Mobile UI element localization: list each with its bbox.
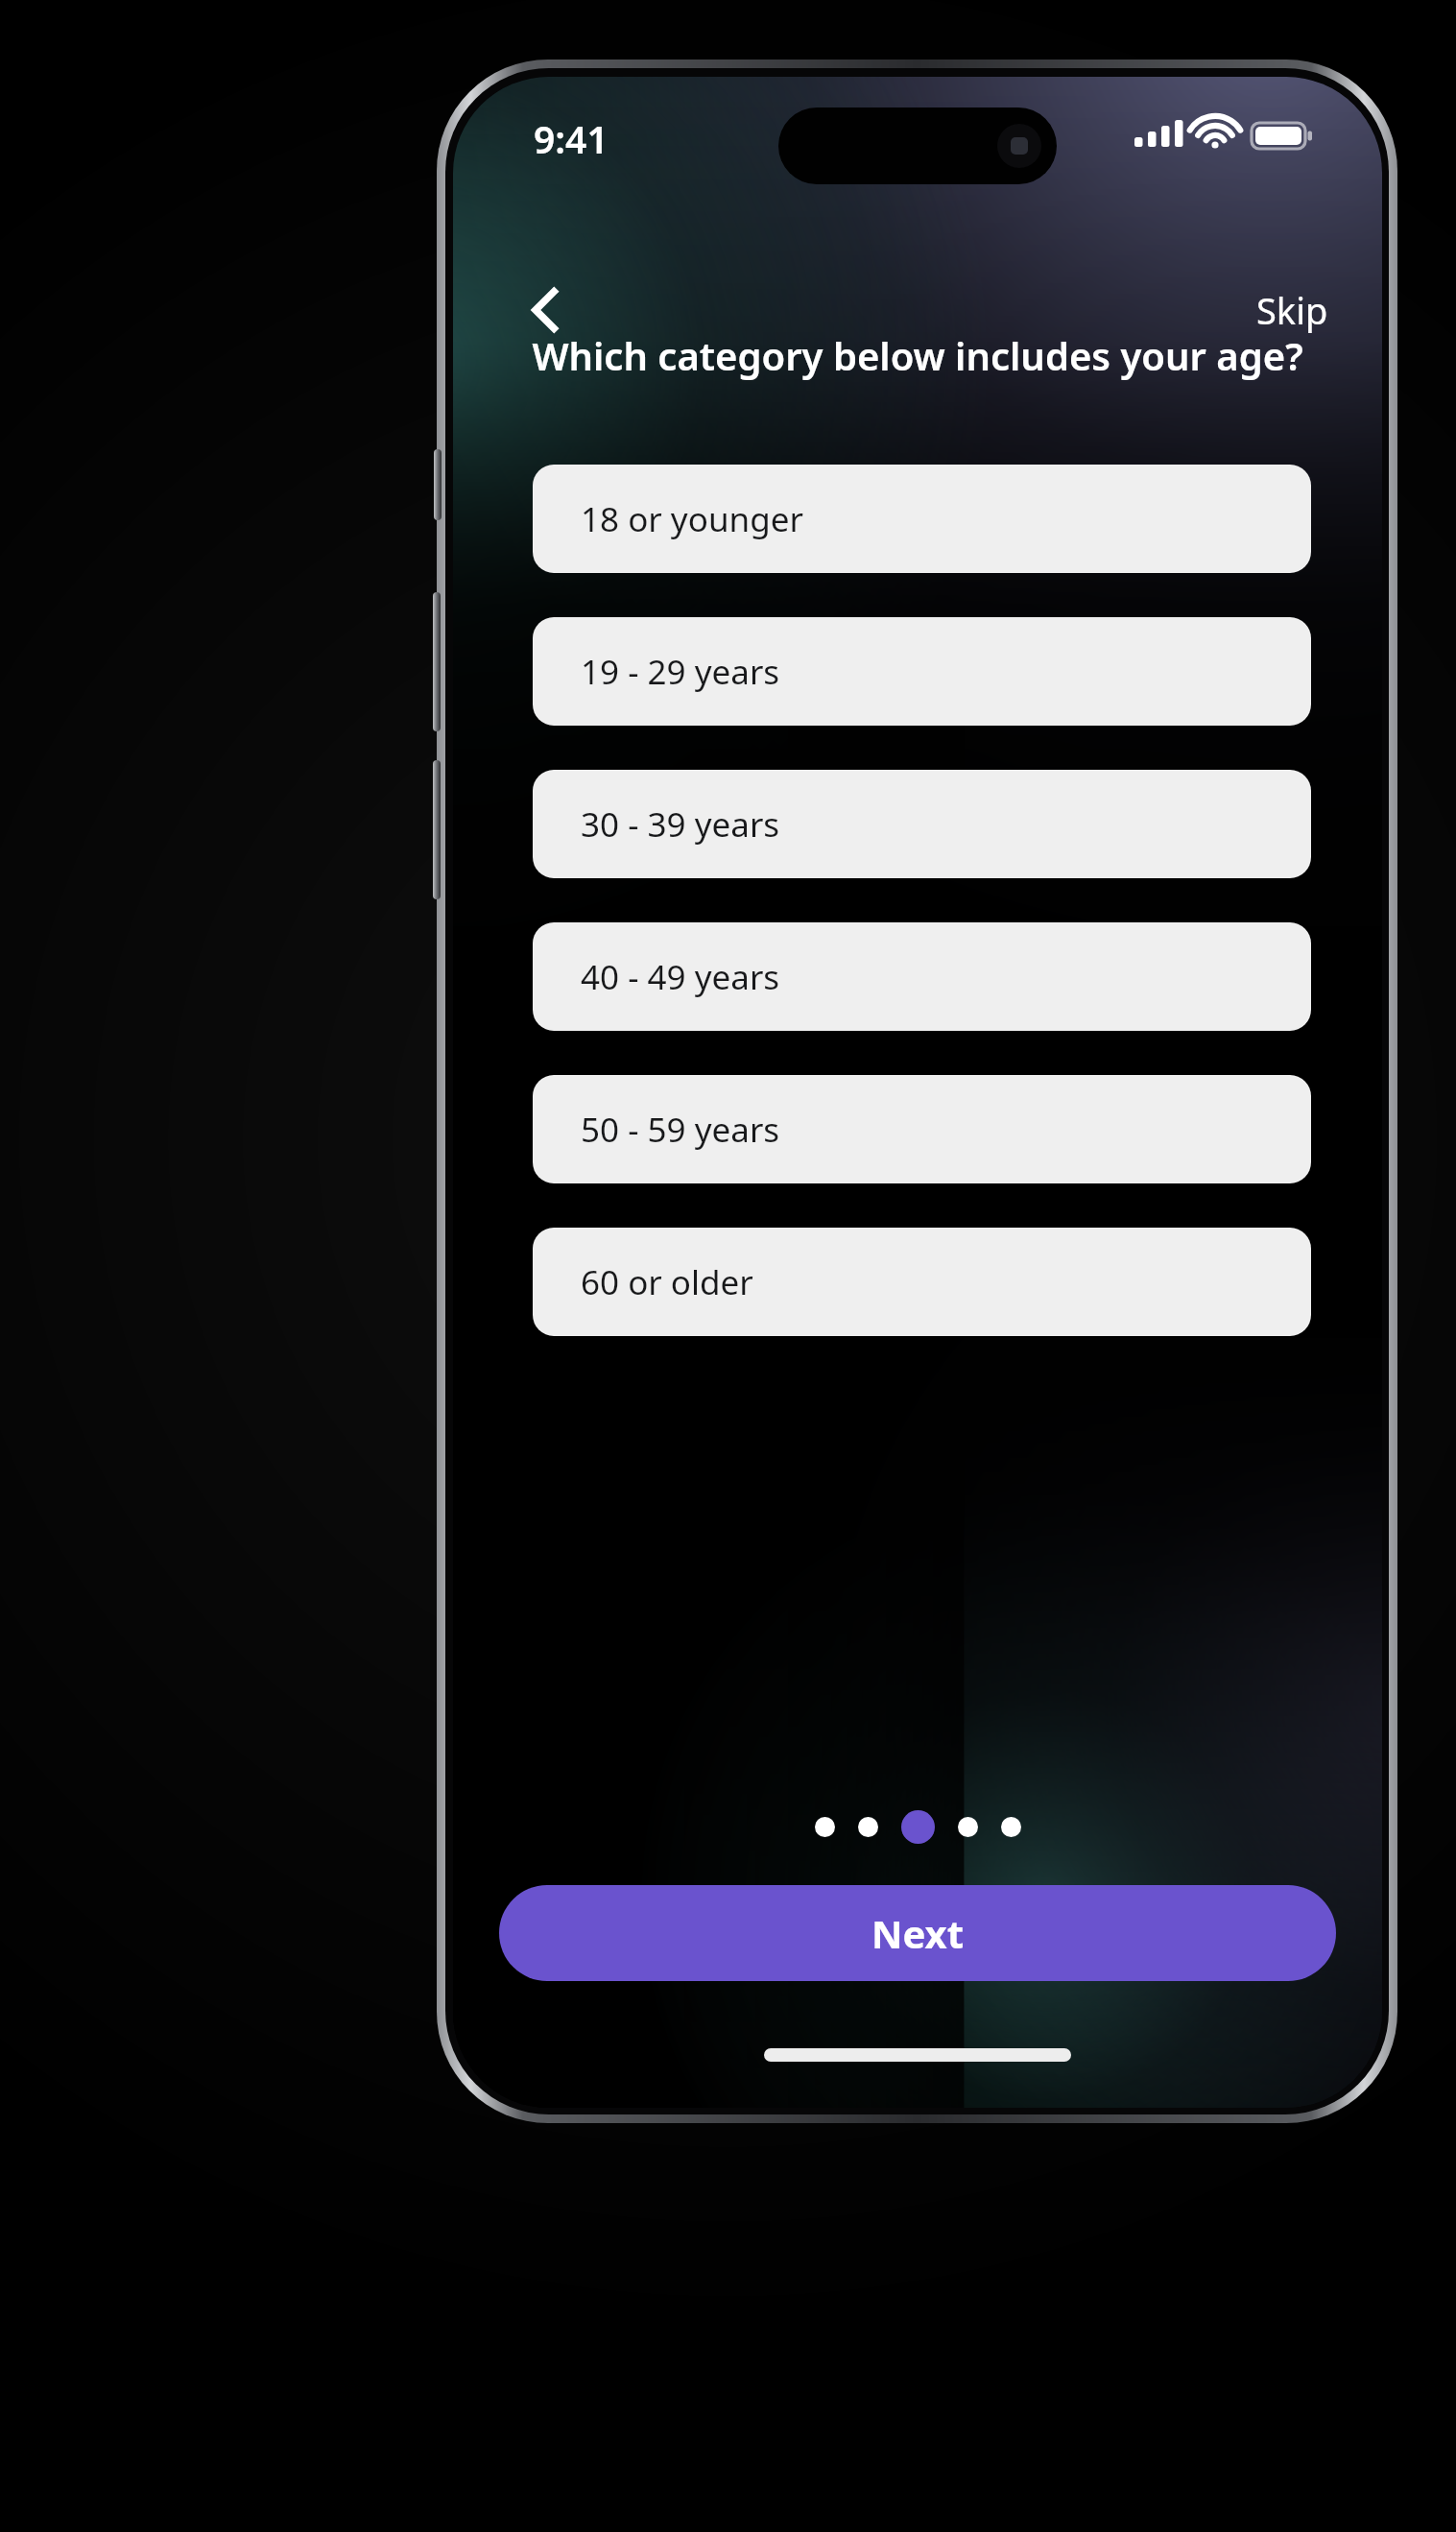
staticText: Which category below includes your age?: [532, 329, 1303, 381]
staticText: 19 - 29 years: [581, 649, 780, 695]
staticText: 18 or younger: [581, 496, 803, 542]
staticText: 9:41: [534, 113, 609, 164]
staticText: Next: [871, 1907, 965, 1959]
button[interactable]: 60 or older: [533, 1228, 1311, 1336]
staticText: 40 - 49 years: [581, 954, 780, 1000]
button[interactable]: 19 - 29 years: [533, 617, 1311, 726]
button[interactable]: Back: [493, 257, 599, 363]
staticText: 50 - 59 years: [581, 1107, 780, 1153]
button[interactable]: 18 or younger: [533, 465, 1311, 573]
button[interactable]: 40 - 49 years: [533, 922, 1311, 1031]
staticText: 60 or older: [581, 1259, 753, 1305]
staticText: 30 - 39 years: [581, 801, 780, 848]
staticText: Skip: [1256, 285, 1328, 335]
button[interactable]: Skip: [1228, 266, 1357, 354]
button[interactable]: 30 - 39 years: [533, 770, 1311, 878]
button[interactable]: 50 - 59 years: [533, 1075, 1311, 1183]
button[interactable]: Next: [499, 1885, 1336, 1981]
